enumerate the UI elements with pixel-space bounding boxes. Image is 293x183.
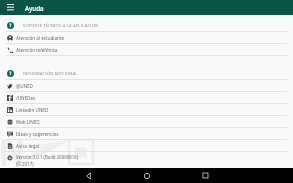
button[interactable]: Back (60, 168, 118, 183)
button[interactable]: Atención telefónica (0, 44, 293, 55)
button[interactable]: Home (118, 168, 176, 183)
button[interactable]: Web UNED (0, 116, 293, 127)
button[interactable]: Linkedin UNED (0, 104, 293, 115)
button[interactable]: Aviso legal (0, 140, 293, 151)
staticText: Versión 3.0.1 (Build 20000816) (16, 154, 79, 160)
button[interactable]: Ideas y sugerencias (0, 128, 293, 139)
staticText: Ayuda (25, 4, 44, 12)
staticText: Ideas y sugerencias (16, 131, 59, 137)
staticText: SOPORTE TÉCNICO A LA APLICACIÓN (23, 23, 99, 28)
button[interactable]: @UNED (0, 80, 293, 91)
button[interactable]: Recent apps (176, 168, 234, 183)
staticText: /UNEDes (16, 95, 36, 101)
button[interactable]: Open navigation menu (5, 2, 16, 13)
staticText: Atención telefónica (16, 47, 58, 53)
staticText: INFORMACIÓN ADICIONAL (23, 71, 78, 76)
staticText: Web UNED (16, 119, 40, 125)
staticText: Linkedin UNED (16, 107, 49, 113)
staticText: (© 2017) (16, 161, 34, 167)
button[interactable]: Atención al estudiante (0, 32, 293, 43)
staticText: @UNED (16, 83, 33, 89)
staticText: Aviso legal (16, 143, 39, 149)
staticText: Atención al estudiante (16, 35, 65, 41)
button[interactable]: /UNEDes (0, 92, 293, 103)
